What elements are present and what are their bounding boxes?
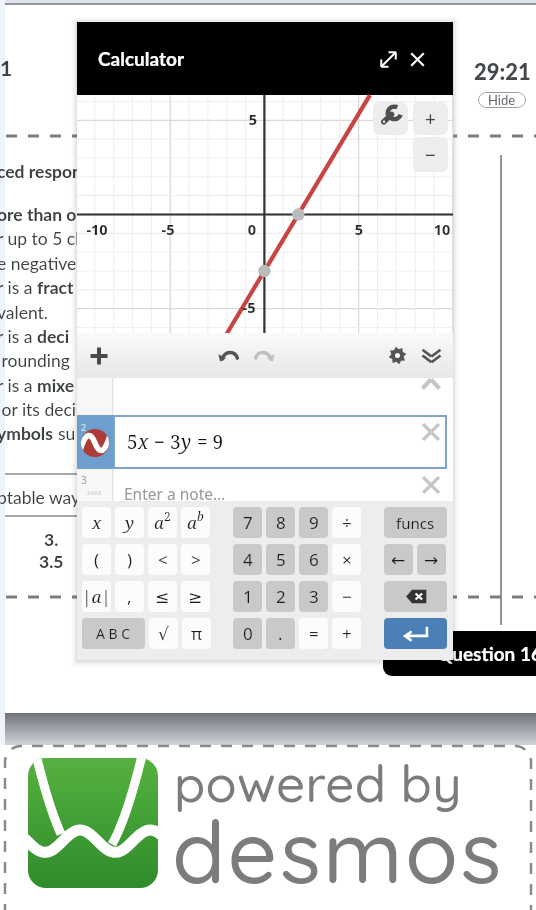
staticText: y: [181, 429, 192, 455]
button[interactable]: 4: [233, 544, 262, 575]
staticText: fract: [37, 277, 74, 298]
button[interactable]: ≥: [181, 581, 210, 612]
staticText: (: [94, 548, 100, 571]
button[interactable]: Add expression: [85, 342, 113, 370]
button[interactable]: Redo: [250, 342, 278, 370]
staticText: −: [425, 142, 436, 168]
button[interactable]: +: [332, 618, 361, 649]
button[interactable]: Settings: [373, 102, 408, 135]
button[interactable]: 0: [233, 618, 262, 649]
staticText: +: [342, 622, 352, 645]
staticText: 3: [309, 585, 319, 608]
button[interactable]: Delete note: [422, 476, 442, 496]
button[interactable]: >: [181, 544, 210, 575]
staticText: 3.: [44, 529, 59, 550]
button[interactable]: Close: [401, 43, 434, 76]
button[interactable]: 8: [266, 507, 295, 538]
staticText: =: [309, 622, 319, 645]
staticText: Enter a note…: [124, 483, 226, 504]
button[interactable]: Collapse row: [421, 378, 441, 390]
button[interactable]: ×: [332, 544, 361, 575]
button[interactable]: Collapse keypad: [419, 343, 444, 368]
staticText: ←: [391, 550, 406, 570]
button[interactable]: [384, 618, 447, 649]
button[interactable]: Undo: [215, 342, 243, 370]
staticText: x: [138, 429, 149, 455]
staticText: r up to 5 ch: [0, 228, 85, 249]
button[interactable]: A B C: [82, 618, 145, 649]
staticText: ): [127, 548, 133, 571]
button[interactable]: 3: [77, 469, 453, 529]
button[interactable]: ,: [115, 581, 144, 612]
staticText: r is a: [0, 326, 37, 347]
staticText: 5: [276, 548, 286, 571]
button[interactable]: Zoom in: [413, 102, 448, 135]
button[interactable]: funcs: [384, 507, 447, 538]
staticText: ,: [127, 585, 132, 608]
staticText: 29:21: [474, 58, 531, 84]
button[interactable]: Zoom out: [413, 137, 448, 172]
button[interactable]: [384, 581, 447, 612]
button[interactable]: Hide: [478, 92, 526, 108]
button[interactable]: 7: [233, 507, 262, 538]
button[interactable]: π: [182, 618, 211, 649]
staticText: su: [58, 423, 76, 444]
staticText: r is a: [0, 277, 37, 298]
staticText: 1: [0, 55, 13, 80]
button[interactable]: 5: [266, 544, 295, 575]
button[interactable]: (: [82, 544, 111, 575]
button[interactable]: Collapse row: [77, 378, 453, 415]
staticText: Calculator: [98, 47, 185, 70]
button[interactable]: →: [417, 544, 446, 575]
staticText: deci: [37, 326, 70, 347]
button[interactable]: x: [82, 507, 111, 538]
staticText: π: [191, 622, 203, 645]
staticText: 4: [243, 548, 253, 571]
button[interactable]: Delete expression: [422, 423, 442, 443]
button[interactable]: Graph settings: [385, 343, 410, 368]
button[interactable]: 29:21: [474, 58, 531, 84]
button[interactable]: ): [115, 544, 144, 575]
button[interactable]: −: [332, 581, 361, 612]
button[interactable]: 6: [299, 544, 328, 575]
staticText: ced respon: [0, 161, 82, 182]
staticText: y: [125, 511, 134, 534]
staticText: 3: [170, 429, 181, 455]
button[interactable]: y: [115, 507, 144, 538]
button[interactable]: a: [181, 507, 210, 538]
button[interactable]: ≤: [148, 581, 177, 612]
staticText: desmos: [172, 796, 504, 905]
staticText: 5: [127, 429, 138, 455]
staticText: ≤: [155, 587, 170, 607]
staticText: ymbols: [0, 423, 58, 444]
staticText: A B C: [96, 624, 131, 643]
staticText: ≥: [188, 587, 203, 607]
button[interactable]: 9: [299, 507, 328, 538]
button[interactable]: Expand: [372, 43, 405, 76]
button[interactable]: 3: [299, 581, 328, 612]
button[interactable]: a: [148, 507, 177, 538]
button[interactable]: √: [149, 618, 178, 649]
staticText: r is a: [0, 375, 37, 396]
button[interactable]: 1: [233, 581, 262, 612]
staticText: >: [191, 548, 201, 571]
button[interactable]: |a|: [82, 581, 111, 612]
button[interactable]: =: [299, 618, 328, 649]
button[interactable]: ÷: [332, 507, 361, 538]
staticText: 0: [243, 622, 253, 645]
button[interactable]: ←: [384, 544, 413, 575]
button[interactable]: <: [148, 544, 177, 575]
staticText: 5: [341, 219, 377, 239]
button[interactable]: 2: [266, 581, 295, 612]
staticText: x: [92, 511, 102, 534]
staticText: √: [158, 624, 169, 644]
button[interactable]: Desmos logo: [28, 758, 158, 888]
button[interactable]: 2: [77, 415, 453, 469]
staticText: mixe: [37, 375, 75, 396]
other: Enter: [384, 618, 447, 649]
other: Left: [384, 544, 413, 575]
button[interactable]: Question 16: [383, 631, 536, 676]
staticText: -5: [150, 219, 186, 239]
button[interactable]: .: [266, 618, 295, 649]
staticText: 2: [164, 508, 171, 524]
